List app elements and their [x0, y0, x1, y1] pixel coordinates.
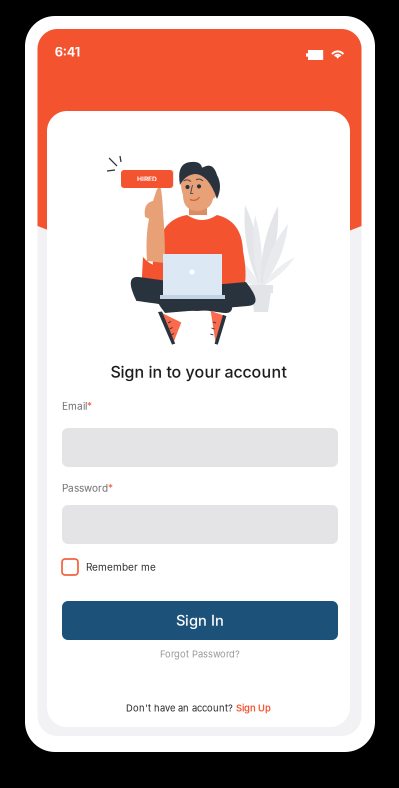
staticText: Forgot Password?: [160, 648, 240, 660]
staticText: Remember me: [86, 561, 156, 573]
staticText: *: [87, 400, 92, 412]
staticText: Don't have an account?: [126, 702, 233, 714]
staticText: Sign In: [176, 612, 224, 629]
staticText: *: [108, 482, 113, 494]
button[interactable]: Remember me: [62, 556, 192, 578]
button[interactable]: Sign In: [62, 601, 338, 640]
staticText: Sign in to your account: [110, 362, 286, 382]
staticText: 6:41: [55, 44, 80, 60]
button[interactable]: Forgot Password?: [62, 646, 338, 662]
staticText: HIRED: [137, 175, 157, 183]
button[interactable]: Sign Up: [236, 702, 271, 714]
staticText: Password: [62, 482, 108, 494]
staticText: Sign Up: [236, 702, 271, 714]
staticText: Email: [62, 400, 87, 412]
